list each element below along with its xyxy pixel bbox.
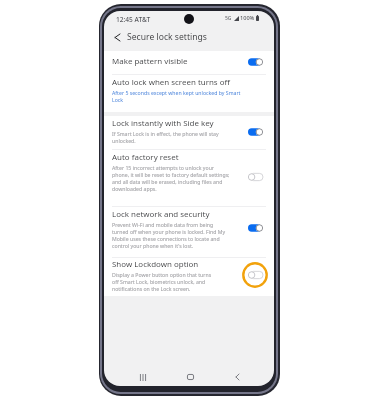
staticText: Show Lockdown option (112, 259, 199, 270)
staticText: Prevent Wi-Fi and mobile data from being… (112, 221, 228, 249)
button[interactable]: Auto factory reset (242, 164, 268, 190)
button[interactable]: Recent apps (132, 366, 154, 386)
staticText: 5G (225, 15, 232, 22)
button[interactable]: Home (179, 366, 201, 386)
button[interactable]: Back (226, 366, 248, 386)
staticText: If Smart Lock is in effect, the phone wi… (112, 130, 225, 144)
button[interactable]: Lock instantly with Side key (242, 119, 268, 145)
staticText: Make pattern visible (112, 56, 188, 67)
staticText: Secure lock settings (127, 31, 207, 43)
staticText: Auto lock when screen turns off (112, 77, 230, 88)
button[interactable]: Auto lock when screen turns off (112, 77, 242, 88)
staticText: 12:45 AT&T (116, 15, 151, 24)
staticText: Lock network and security (112, 209, 210, 220)
button[interactable]: Make pattern visible (112, 56, 242, 67)
button[interactable]: Show Lockdown option (242, 262, 268, 288)
button[interactable]: Lock instantly with Side key (112, 118, 242, 129)
button[interactable]: Back (109, 29, 125, 45)
button[interactable]: Make pattern visible (242, 49, 268, 75)
button[interactable]: Show Lockdown option (112, 259, 242, 270)
staticText: Lock instantly with Side key (112, 118, 214, 129)
staticText: Display a Power button option that turns… (112, 271, 216, 292)
staticText: After 5 seconds except when kept unlocke… (112, 89, 243, 103)
button[interactable]: Lock network and security (242, 215, 268, 241)
button[interactable]: Back (109, 28, 207, 46)
staticText: 100% (240, 14, 255, 22)
button[interactable]: Auto factory reset (112, 152, 242, 163)
staticText: After 15 incorrect attempts to unlock yo… (112, 164, 230, 192)
staticText: Auto factory reset (112, 152, 179, 163)
button[interactable]: Lock network and security (112, 209, 242, 220)
